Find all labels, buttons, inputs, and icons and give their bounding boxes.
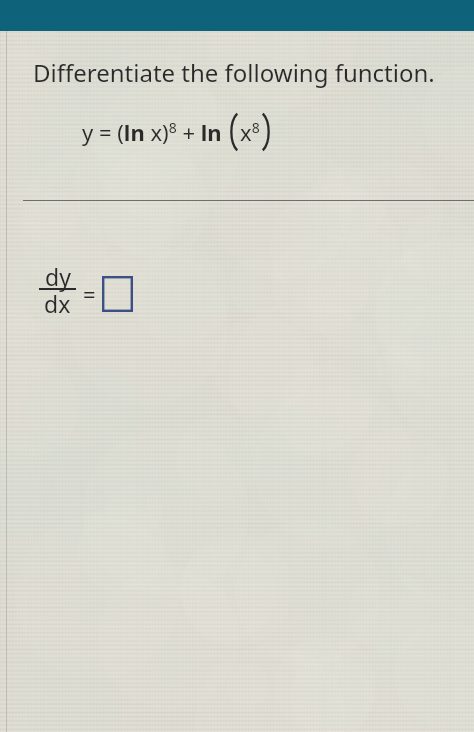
button[interactable]: Differentiate the following function. (33, 56, 435, 89)
button[interactable]: y = (ln x)8 + ln (82, 112, 272, 152)
button[interactable]: Answer input box (102, 276, 133, 312)
staticText: y = (ln x)8 + ln (82, 117, 228, 147)
staticText: = (83, 279, 96, 309)
staticText: Differentiate the following function. (33, 56, 435, 89)
staticText: dx (44, 288, 71, 319)
staticText: dy (45, 261, 71, 292)
staticText: x8 (240, 117, 260, 147)
